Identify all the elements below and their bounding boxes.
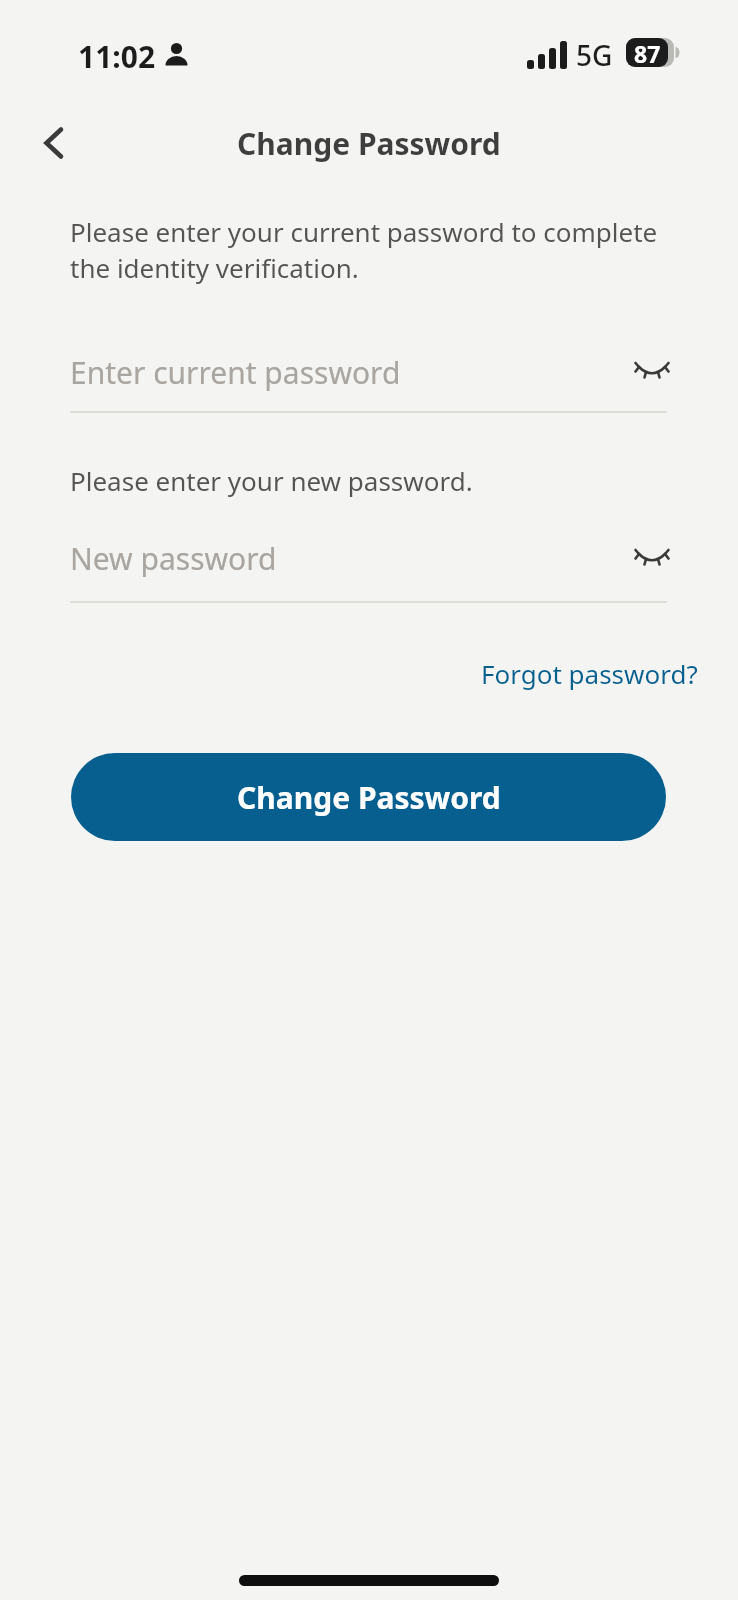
- button[interactable]: Forgot password?: [481, 656, 698, 691]
- staticText: New password: [70, 538, 277, 578]
- staticText: 5G: [576, 36, 613, 72]
- staticText: Please enter your current password to co…: [70, 214, 658, 286]
- staticText: Change Password: [237, 123, 501, 164]
- staticText: 87: [634, 38, 661, 69]
- staticText: Change Password: [237, 777, 501, 818]
- staticText: 11:02: [78, 36, 156, 72]
- button[interactable]: [26, 115, 82, 171]
- staticText: Please enter your new password.: [70, 463, 473, 498]
- staticText: Forgot password?: [481, 656, 698, 691]
- button[interactable]: Change Password: [71, 753, 666, 841]
- staticText: Enter current password: [70, 352, 401, 392]
